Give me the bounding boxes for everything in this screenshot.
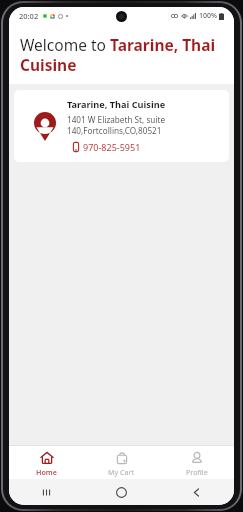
staticText: 1401 W Elizabeth St, suite [67,114,166,125]
button[interactable]: 970-825-5951 [67,140,143,154]
button[interactable]: Back [159,479,234,505]
staticText: 140,Fortcollins,CO,80521 [67,125,162,136]
staticText: 100% [199,11,217,21]
staticText: Welcome to Tararine, Thai Cuisine [20,34,223,75]
button[interactable]: Tararine, Thai Cuisine [14,90,229,162]
button[interactable]: Home [9,446,84,479]
staticText: Profile [186,467,208,477]
staticText: 20:02 [19,11,39,21]
staticText: Tararine, Thai Cuisine [67,98,166,111]
button[interactable]: Home [84,479,159,505]
button[interactable]: Recent apps [9,479,84,505]
staticText: Home [36,467,57,477]
button[interactable]: My Cart [84,446,159,479]
staticText: My Cart [108,467,135,477]
button[interactable]: Profile [159,446,234,479]
staticText: 970-825-5951 [83,141,141,153]
